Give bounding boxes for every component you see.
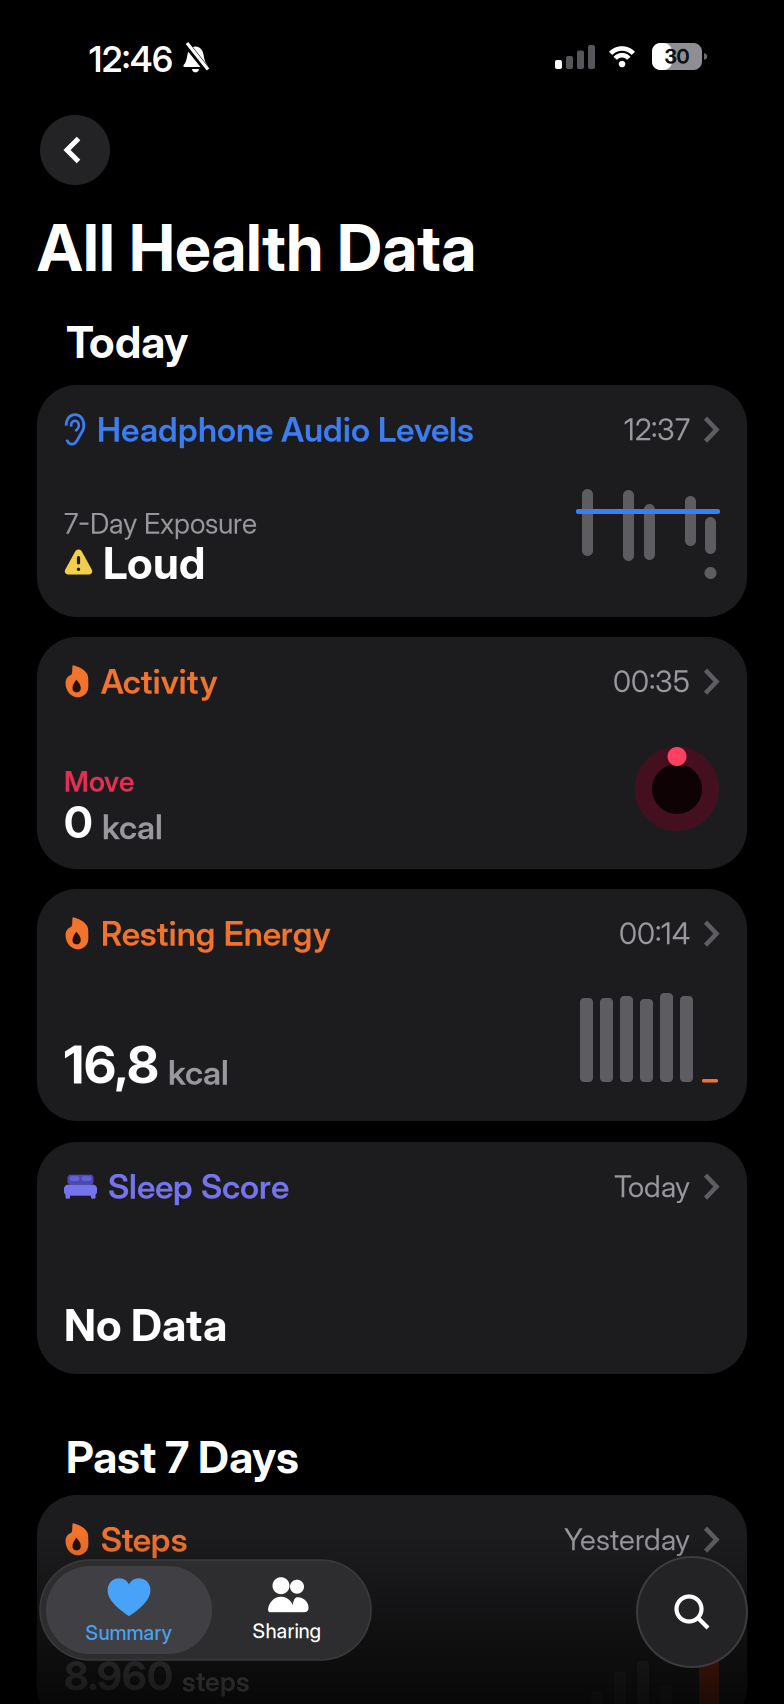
staticText: 8.960 <box>64 1652 173 1699</box>
button[interactable]: Headphone Audio Levels <box>37 385 747 617</box>
button[interactable]: Search <box>637 1557 747 1667</box>
button[interactable]: Sleep Score <box>37 1142 747 1374</box>
staticText: kcal <box>102 808 163 847</box>
staticText: steps <box>182 1666 249 1697</box>
staticText: Steps <box>101 1520 188 1559</box>
staticText: 30 <box>664 45 689 68</box>
staticText: Today <box>66 316 188 368</box>
staticText: Past 7 Days <box>66 1431 299 1483</box>
staticText: Loud <box>103 537 205 589</box>
staticText: 12:37 <box>624 412 690 447</box>
staticText: 0 <box>64 796 93 848</box>
staticText: Resting Energy <box>101 914 331 953</box>
staticText: Headphone Audio Levels <box>97 410 474 449</box>
staticText: Today <box>614 1169 690 1204</box>
button[interactable]: Sharing <box>212 1566 362 1654</box>
button[interactable]: Resting Energy <box>37 889 747 1121</box>
staticText: kcal <box>168 1053 229 1092</box>
staticText: No Data <box>64 1299 227 1351</box>
staticText: 00:35 <box>613 664 690 699</box>
staticText: 7-Day Exposure <box>64 507 257 540</box>
staticText: Activity <box>101 662 218 701</box>
staticText: 16,8 <box>64 1034 159 1095</box>
button[interactable]: Activity <box>37 637 747 869</box>
button[interactable]: Steps <box>37 1495 747 1704</box>
staticText: Summary <box>85 1621 172 1644</box>
staticText: 00:14 <box>619 916 690 951</box>
staticText: Sharing <box>252 1619 321 1643</box>
staticText: Yesterday <box>564 1522 690 1557</box>
staticText: Sleep Score <box>108 1167 289 1206</box>
staticText: All Health Data <box>37 210 476 285</box>
button[interactable]: Summary <box>46 1566 212 1654</box>
button[interactable]: Back <box>40 115 110 185</box>
staticText: Move <box>64 765 134 798</box>
staticText: 12:46 <box>89 39 173 80</box>
